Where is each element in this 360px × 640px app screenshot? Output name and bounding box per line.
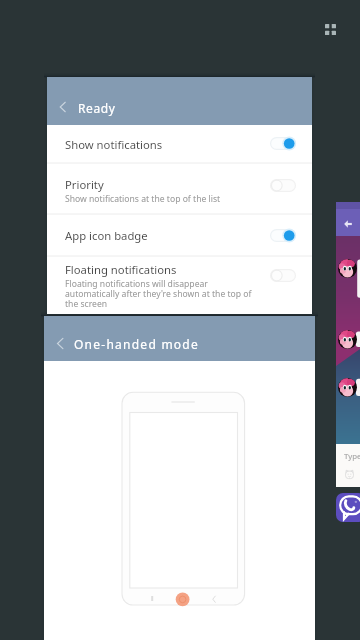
staticText: App icon badge bbox=[65, 228, 148, 243]
staticText: Floating notifications will disappear au… bbox=[65, 278, 252, 309]
button[interactable]: Grid view bbox=[312, 11, 349, 48]
button[interactable]: Viber bbox=[336, 493, 360, 522]
staticText: Priority bbox=[65, 177, 104, 192]
staticText: Type bbox=[344, 451, 360, 462]
button[interactable]: Show notifications bbox=[47, 125, 312, 162]
button[interactable]: One-handed mode bbox=[44, 316, 315, 361]
staticText: Show notifications bbox=[65, 137, 163, 152]
button[interactable]: Floating notifications bbox=[47, 257, 312, 314]
staticText: Show notifications at the top of the lis… bbox=[65, 193, 221, 205]
staticText: Floating notifications bbox=[65, 262, 177, 277]
button[interactable]: Priority bbox=[47, 164, 312, 213]
staticText: Ready bbox=[78, 100, 116, 116]
button[interactable]: App icon badge bbox=[47, 215, 312, 255]
staticText: One-handed mode bbox=[74, 336, 200, 352]
button[interactable]: Ready bbox=[47, 77, 312, 125]
